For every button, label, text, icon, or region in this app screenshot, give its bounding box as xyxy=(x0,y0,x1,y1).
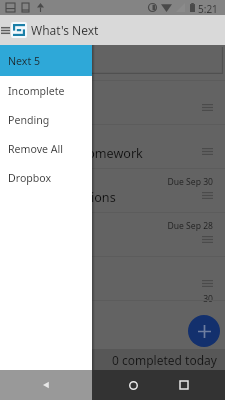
staticText: Incomplete xyxy=(8,84,65,98)
button[interactable]: Recents xyxy=(173,374,195,396)
staticText: Dropbox xyxy=(8,171,52,185)
button[interactable]: Remove All xyxy=(0,134,92,163)
staticText: 5:21 xyxy=(198,2,218,16)
staticText: Next 5 xyxy=(8,54,41,68)
staticText: Due Sep 28 xyxy=(0,220,213,232)
staticText: Finish math homework xyxy=(7,145,143,162)
staticText: Due Sep 30 xyxy=(0,176,213,188)
button[interactable] xyxy=(0,45,225,400)
staticText: Pending xyxy=(8,113,50,127)
button[interactable]: Due Sep 30 xyxy=(0,168,225,212)
button[interactable]: Back xyxy=(35,374,57,396)
button[interactable]: Pending xyxy=(0,105,92,134)
staticText: New item xyxy=(12,55,66,71)
staticText: 0 completed today xyxy=(112,352,217,368)
staticText: What's Next xyxy=(31,22,99,38)
button[interactable]: Incomplete xyxy=(0,76,92,105)
button[interactable]: Dropbox xyxy=(0,163,92,192)
staticText: Buy milk xyxy=(7,101,58,118)
button[interactable]: 30 xyxy=(0,256,225,300)
button[interactable]: Next 5 xyxy=(0,45,92,76)
button[interactable]: Finish math homework xyxy=(0,124,225,168)
button[interactable]: New item xyxy=(4,47,223,74)
button[interactable]: Add item xyxy=(188,315,220,347)
button[interactable]: Menu xyxy=(0,15,11,45)
button[interactable]: Home xyxy=(122,374,144,396)
button[interactable]: Buy milk xyxy=(0,80,225,124)
staticText: Make reservations xyxy=(7,189,116,206)
staticText: Remove All xyxy=(8,142,64,156)
staticText: 30 xyxy=(0,293,213,305)
button[interactable]: Due Sep 28 xyxy=(0,212,225,256)
button[interactable]: Sort xyxy=(0,349,225,370)
